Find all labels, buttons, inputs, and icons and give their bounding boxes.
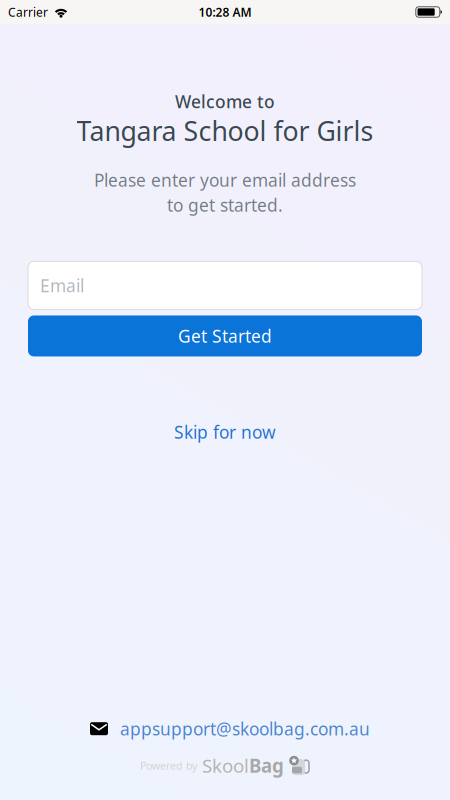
staticText: appsupport@skoolbag.com.au bbox=[120, 717, 370, 740]
staticText: 10:28 AM bbox=[198, 4, 251, 20]
button[interactable]: Skip for now bbox=[174, 420, 276, 443]
staticText: to get started. bbox=[167, 193, 283, 216]
staticText: Bag bbox=[249, 753, 284, 778]
staticText: Carrier bbox=[8, 4, 48, 20]
staticText: Welcome to bbox=[175, 90, 275, 113]
staticText: Please enter your email address bbox=[94, 168, 356, 191]
staticText: Tangara School for Girls bbox=[76, 113, 373, 148]
staticText: Skool bbox=[202, 753, 249, 778]
staticText: Email bbox=[40, 274, 84, 297]
button[interactable]: appsupport@skoolbag.com.au bbox=[85, 717, 365, 740]
button[interactable]: Get Started bbox=[0, 315, 450, 356]
staticText: Powered by bbox=[140, 758, 197, 773]
button[interactable]: Email bbox=[0, 261, 450, 309]
staticText: Get Started bbox=[178, 324, 272, 347]
staticText: Skip for now bbox=[174, 420, 276, 443]
